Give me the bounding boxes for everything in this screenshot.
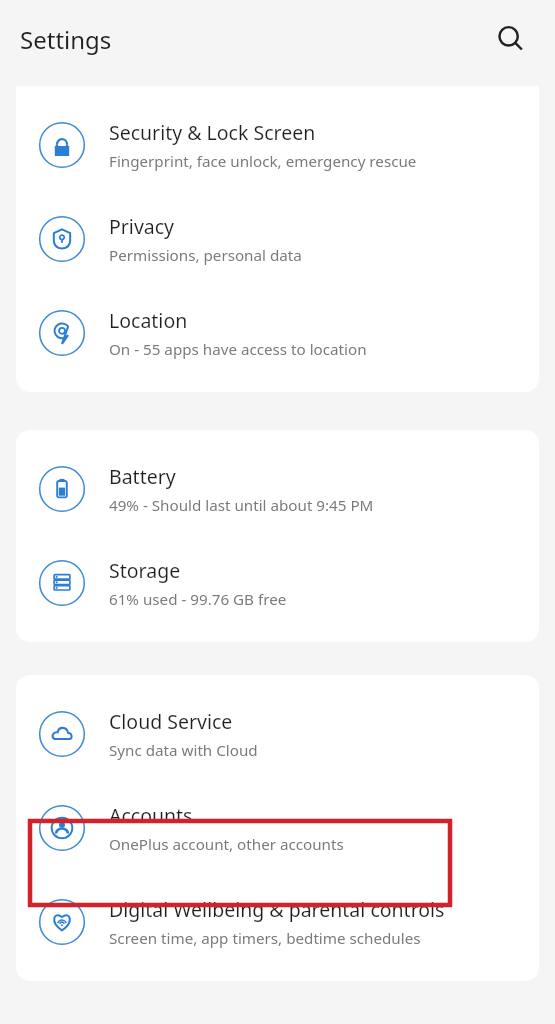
staticText: Permissions, personal data — [109, 245, 302, 266]
button[interactable]: Search — [487, 15, 535, 63]
staticText: Fingerprint, face unlock, emergency resc… — [109, 151, 417, 172]
button[interactable]: Accounts — [16, 781, 539, 875]
staticText: Battery — [109, 463, 176, 490]
staticText: Cloud Service — [109, 708, 233, 735]
staticText: Accounts — [109, 802, 193, 829]
staticText: Sync data with Cloud — [109, 740, 258, 761]
button[interactable]: Location — [16, 286, 539, 380]
button[interactable]: Security & Lock Screen — [16, 98, 539, 192]
staticText: On - 55 apps have access to location — [109, 339, 367, 360]
button[interactable]: Digital Wellbeing & parental controls — [16, 875, 539, 969]
staticText: OnePlus account, other accounts — [109, 834, 344, 855]
staticText: Privacy — [109, 213, 175, 240]
staticText: 61% used - 99.76 GB free — [109, 589, 287, 610]
button[interactable]: Privacy — [16, 192, 539, 286]
button[interactable]: Cloud Service — [16, 687, 539, 781]
staticText: Storage — [109, 557, 181, 584]
button[interactable]: Battery — [16, 442, 539, 536]
button[interactable]: Storage — [16, 536, 539, 630]
staticText: Screen time, app timers, bedtime schedul… — [109, 928, 421, 949]
staticText: Settings — [20, 23, 112, 56]
staticText: Digital Wellbeing & parental controls — [109, 896, 445, 923]
staticText: Location — [109, 307, 188, 334]
staticText: 49% - Should last until about 9:45 PM — [109, 495, 374, 516]
staticText: Security & Lock Screen — [109, 119, 316, 146]
